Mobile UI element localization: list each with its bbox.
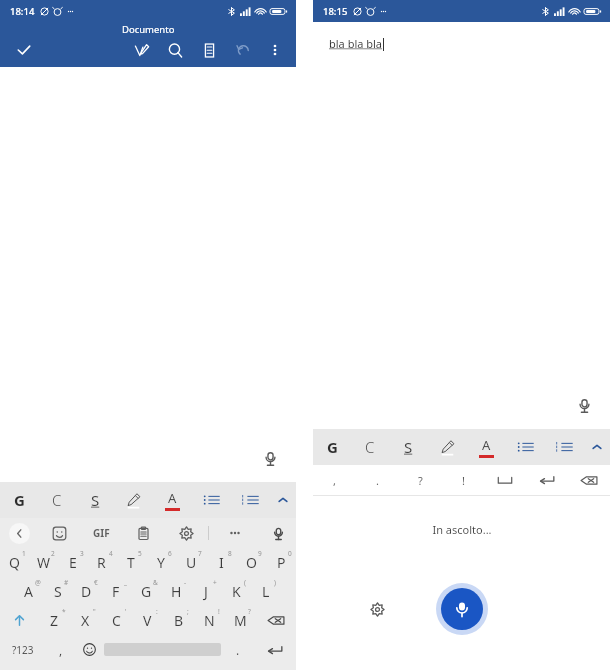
button[interactable]: C	[351, 429, 389, 465]
button[interactable]: Dictate	[252, 440, 289, 477]
staticText: V	[143, 611, 152, 630]
button[interactable]: D	[72, 577, 101, 606]
staticText: ?123	[12, 643, 34, 657]
staticText: 8	[228, 549, 232, 558]
button[interactable]: Done	[12, 38, 36, 62]
button[interactable]: A	[14, 577, 43, 606]
button[interactable]: W	[29, 548, 58, 577]
button[interactable]: Search	[162, 37, 188, 63]
button[interactable]: More options	[262, 37, 288, 63]
button[interactable]: ,	[46, 635, 75, 664]
staticText: A	[482, 436, 491, 454]
button[interactable]: Undo	[230, 37, 256, 63]
button[interactable]: .	[356, 465, 399, 495]
button[interactable]: Numbered list	[231, 482, 270, 518]
button[interactable]: L	[251, 577, 281, 606]
button[interactable]: Collapse	[584, 429, 610, 465]
button[interactable]: !	[442, 465, 484, 495]
button[interactable]: V	[132, 606, 163, 635]
button[interactable]: S	[43, 577, 72, 606]
button[interactable]: .	[221, 635, 254, 664]
staticText: +	[213, 578, 217, 587]
button[interactable]: Y	[146, 548, 176, 577]
button[interactable]: O	[236, 548, 266, 577]
staticText: '	[125, 607, 127, 616]
button[interactable]: Enter	[526, 465, 568, 495]
button[interactable]: Dictate	[566, 387, 603, 424]
staticText: &	[153, 578, 158, 587]
staticText: S	[91, 490, 100, 510]
button[interactable]: R	[87, 548, 116, 577]
button[interactable]: Stop listening	[441, 588, 483, 630]
button[interactable]: Bulleted list	[506, 429, 545, 465]
button[interactable]: Backspace	[256, 606, 296, 635]
button[interactable]: E	[58, 548, 87, 577]
button[interactable]: View	[196, 37, 222, 63]
button[interactable]: Highlight	[114, 482, 153, 518]
button[interactable]: Numbered list	[545, 429, 584, 465]
button[interactable]: Ink	[128, 37, 154, 63]
button[interactable]: Backspace	[568, 465, 610, 495]
button[interactable]: ?123	[0, 635, 46, 664]
button[interactable]: Voice settings	[365, 597, 389, 621]
button[interactable]: ,	[313, 465, 356, 495]
button[interactable]: J	[191, 577, 221, 606]
button[interactable]: H	[161, 577, 191, 606]
button[interactable]: Font color	[153, 482, 192, 518]
button[interactable]: X	[70, 606, 101, 635]
button[interactable]: C	[101, 606, 132, 635]
button[interactable]: Back	[0, 518, 38, 548]
button[interactable]: F	[101, 577, 131, 606]
button[interactable]: C	[38, 482, 76, 518]
staticText: Documento	[122, 23, 175, 36]
button[interactable]: ?	[399, 465, 442, 495]
button[interactable]: U	[176, 548, 206, 577]
staticText: P	[277, 553, 286, 572]
staticText: X	[81, 611, 90, 630]
button[interactable]: Stickers	[38, 518, 80, 548]
button[interactable]: Bulleted list	[192, 482, 231, 518]
staticText: T	[127, 553, 135, 572]
staticText: 18:14	[10, 5, 35, 18]
button[interactable]: G	[0, 482, 38, 518]
staticText: )	[274, 578, 276, 587]
button[interactable]: Emoji	[75, 635, 104, 664]
staticText: !	[218, 607, 220, 616]
button[interactable]: Voice input	[260, 518, 296, 548]
button[interactable]: Collapse	[270, 482, 296, 518]
staticText: F	[112, 582, 120, 601]
button[interactable]: P	[266, 548, 296, 577]
staticText: I	[219, 553, 224, 572]
staticText: ,	[333, 473, 336, 488]
staticText: B	[174, 611, 184, 630]
button[interactable]: K	[221, 577, 251, 606]
button[interactable]: Z	[39, 606, 70, 635]
button[interactable]: Space	[484, 465, 526, 495]
button[interactable]: B	[163, 606, 194, 635]
button[interactable]: N	[194, 606, 225, 635]
button[interactable]: G	[313, 429, 351, 465]
staticText: @	[35, 578, 41, 587]
staticText: #	[64, 578, 69, 587]
button[interactable]: M	[225, 606, 256, 635]
button[interactable]: S	[76, 482, 114, 518]
button[interactable]: More	[209, 518, 260, 548]
button[interactable]: Font color	[467, 429, 506, 465]
button[interactable]: Clipboard	[122, 518, 165, 548]
staticText: K	[232, 582, 241, 601]
button[interactable]: S	[389, 429, 428, 465]
button[interactable]: T	[116, 548, 146, 577]
button[interactable]: Shift	[0, 606, 39, 635]
button[interactable]: Highlight	[428, 429, 467, 465]
button[interactable]: GIF	[80, 518, 122, 548]
staticText: "	[93, 607, 96, 616]
button[interactable]: Keyboard settings	[165, 518, 208, 548]
staticText: €	[94, 578, 98, 587]
button[interactable]: Enter	[254, 635, 296, 664]
staticText: -	[184, 578, 187, 587]
button[interactable]: I	[206, 548, 236, 577]
button[interactable]: Q	[0, 548, 29, 577]
button[interactable]: G	[131, 577, 161, 606]
staticText: ?	[418, 473, 423, 488]
